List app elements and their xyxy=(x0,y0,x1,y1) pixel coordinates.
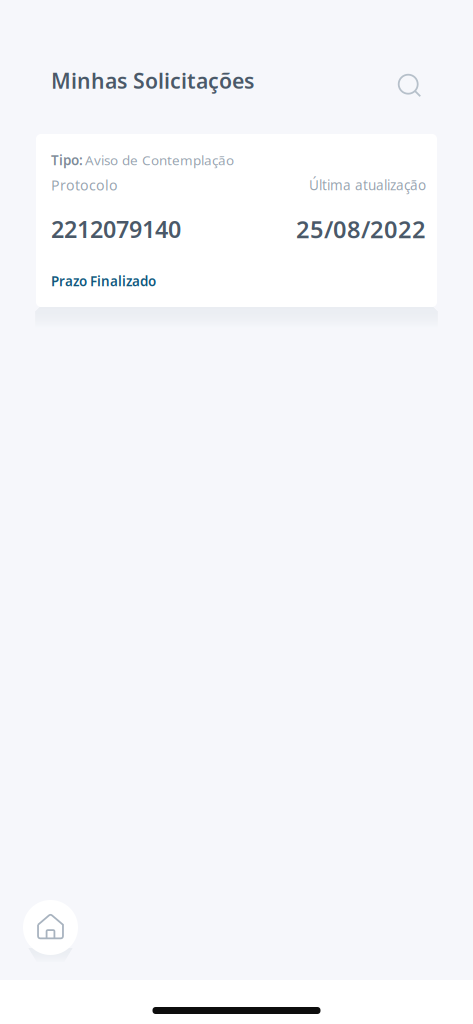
staticText: Prazo Finalizado xyxy=(51,272,156,290)
staticText: 2212079140 xyxy=(51,213,181,245)
button[interactable]: Tipo: xyxy=(36,134,437,307)
staticText: Minhas Solicitações xyxy=(51,66,254,95)
button[interactable]: Home xyxy=(23,900,78,955)
button[interactable]: Search xyxy=(389,65,433,109)
staticText: 25/08/2022 xyxy=(296,213,426,245)
staticText: Tipo: xyxy=(51,151,83,169)
staticText: Protocolo xyxy=(51,175,118,195)
staticText: Aviso de Contemplação xyxy=(85,151,234,169)
staticText: Última atualização xyxy=(309,176,426,194)
